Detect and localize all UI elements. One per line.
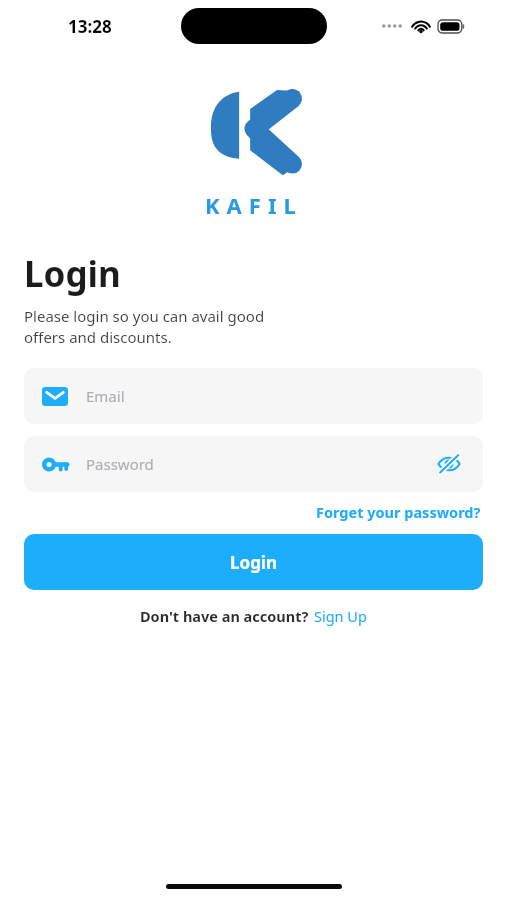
staticText: Forget your password? xyxy=(316,502,481,522)
button[interactable]: Sign Up xyxy=(313,604,368,628)
button[interactable]: Password xyxy=(24,436,483,492)
staticText: Please login so you can avail good offer… xyxy=(24,306,265,348)
other: Email xyxy=(42,387,68,406)
staticText: Don't have an account? xyxy=(140,606,313,626)
staticText: Login xyxy=(230,551,278,574)
button[interactable]: Show password xyxy=(433,450,465,478)
staticText: KAFIL xyxy=(205,190,303,220)
staticText: Login xyxy=(24,250,121,298)
staticText: Password xyxy=(86,454,433,474)
staticText: Email xyxy=(86,386,465,406)
other: Password xyxy=(42,457,68,472)
button[interactable]: Forget your password? xyxy=(314,500,483,524)
staticText: 13:28 xyxy=(68,15,112,38)
button[interactable]: Login xyxy=(24,534,483,590)
staticText: Sign Up xyxy=(314,606,367,626)
button[interactable]: Email xyxy=(24,368,483,424)
